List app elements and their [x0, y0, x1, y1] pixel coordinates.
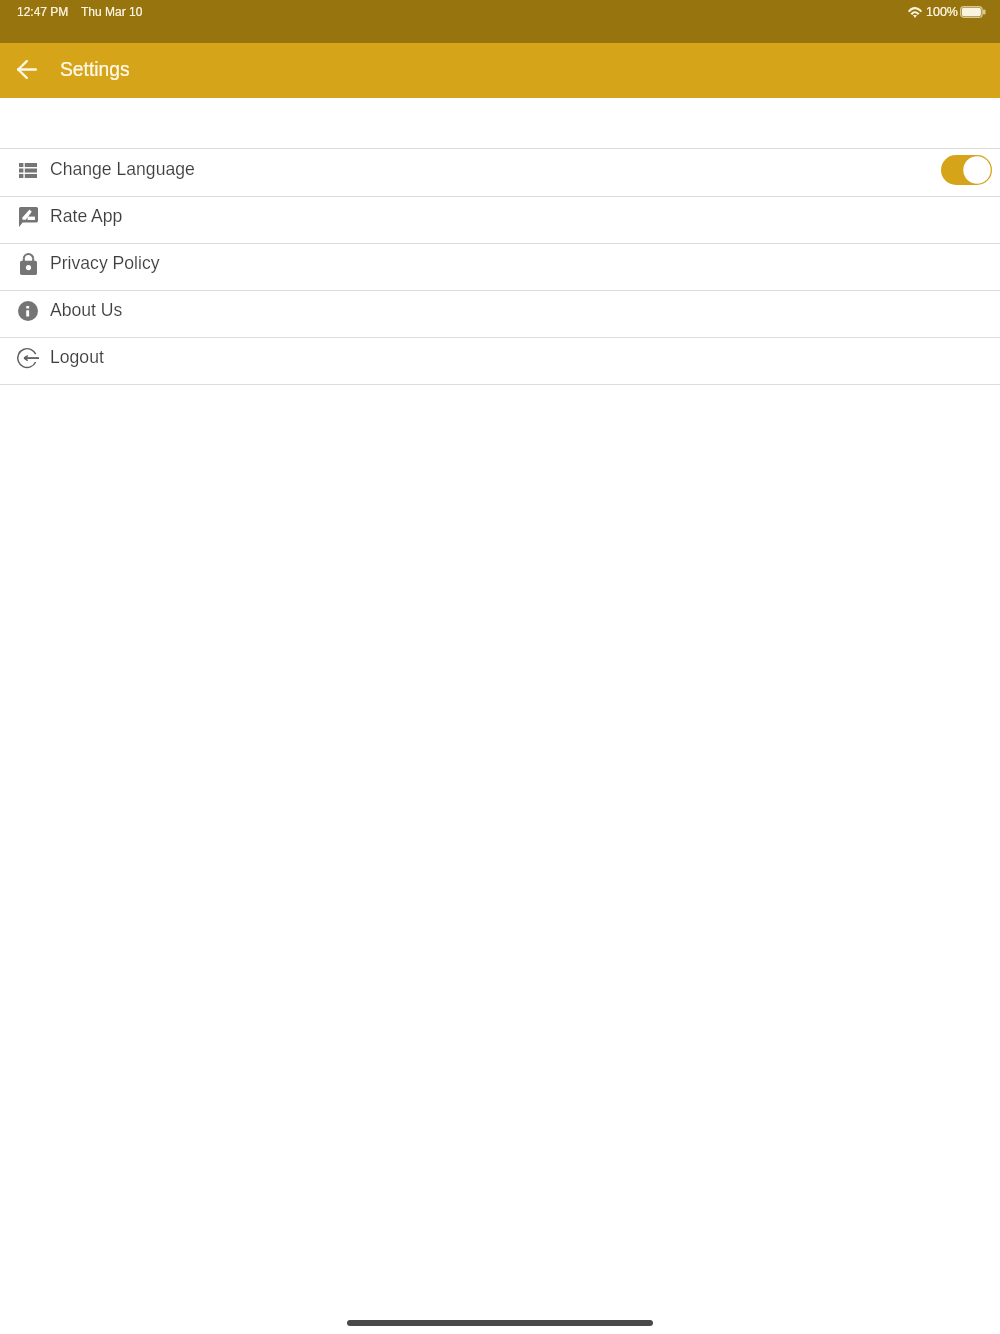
- button[interactable]: Logout: [0, 338, 1000, 384]
- staticText: Change Language: [50, 159, 195, 179]
- button[interactable]: Privacy Policy: [0, 244, 1000, 290]
- staticText: Rate App: [50, 206, 123, 226]
- staticText: About Us: [50, 300, 123, 320]
- button[interactable]: Back: [0, 42, 54, 97]
- staticText: Privacy Policy: [50, 253, 160, 273]
- staticText: 100%: [926, 5, 958, 19]
- button[interactable]: Rate App: [0, 197, 1000, 243]
- button[interactable]: Change Language toggle: [941, 155, 992, 185]
- button[interactable]: Change Language: [0, 149, 1000, 196]
- staticText: 12:47 PM: [17, 5, 69, 18]
- staticText: Logout: [50, 347, 104, 367]
- staticText: Thu Mar 10: [81, 5, 143, 18]
- button[interactable]: About Us: [0, 291, 1000, 337]
- staticText: Settings: [60, 59, 130, 81]
